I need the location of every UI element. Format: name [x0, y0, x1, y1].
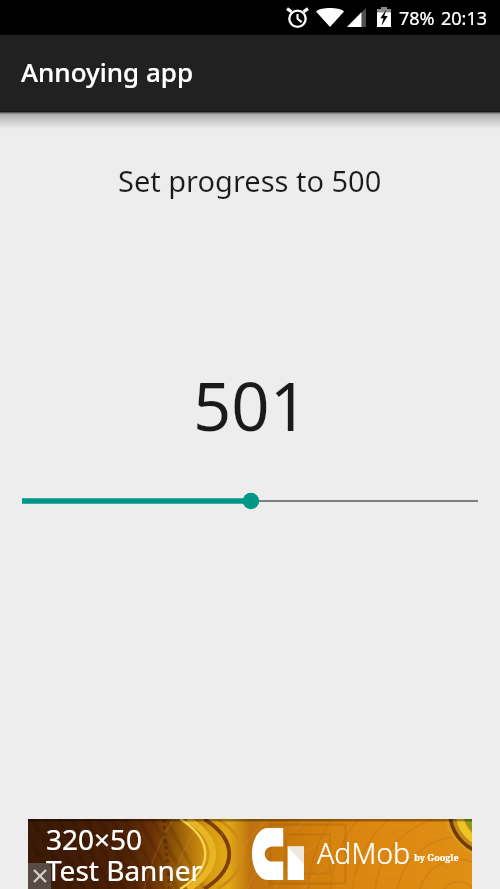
- staticText: 78%: [399, 6, 435, 31]
- other: Battery charging: [377, 7, 391, 27]
- staticText: by Google: [414, 851, 459, 863]
- other: Wi-Fi: [316, 7, 344, 27]
- staticText: 320×50: [46, 820, 143, 858]
- staticText: Test Banner: [46, 851, 203, 889]
- staticText: Set progress to 500: [118, 161, 382, 200]
- staticText: AdMob: [317, 834, 411, 873]
- other: Alarm set: [287, 7, 308, 28]
- button[interactable]: Annoying app: [0, 35, 500, 111]
- staticText: Annoying app: [21, 54, 194, 89]
- button[interactable]: Close ad: [28, 863, 51, 889]
- button[interactable]: AdMob test banner advertisement: [28, 819, 472, 889]
- staticText: 501: [193, 359, 308, 450]
- other: AdMob logo: [252, 828, 304, 880]
- staticText: 20:13: [441, 6, 488, 31]
- button[interactable]: Progress slider, 501: [0, 481, 500, 521]
- other: Mobile signal: [347, 8, 366, 27]
